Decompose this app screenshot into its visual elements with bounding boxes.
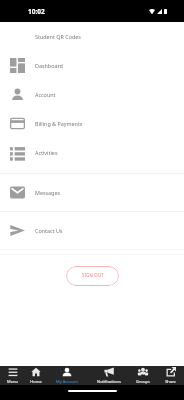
button[interactable]: Student QR Codes [0,22,184,51]
other: Notifications [104,367,114,377]
staticText: Dashboard [35,62,63,69]
staticText: Billing & Payments [35,120,83,127]
staticText: SIGN OUT [82,272,104,278]
button[interactable]: Dashboard [0,51,184,80]
other: Share [166,367,176,377]
other: Groups [138,367,148,377]
staticText: Activities [35,149,58,156]
staticText: Contact Us [35,227,63,234]
button[interactable]: Activities [0,138,184,167]
other: Menu [8,367,18,377]
staticText: Share [165,379,176,384]
staticText: Account [35,91,56,98]
staticText: Home [30,379,42,384]
other: Home [31,367,41,377]
button[interactable]: Messages [0,174,184,211]
staticText: My Account [56,379,78,384]
button[interactable]: SIGN OUT [66,266,119,286]
button[interactable]: Menu [0,366,25,385]
staticText: 10:02 [28,7,45,16]
staticText: Menu [7,379,18,384]
staticText: Notifications [97,379,121,384]
button[interactable]: Account [0,80,184,109]
other: My Account [62,367,72,377]
button[interactable]: Groups [129,366,157,385]
staticText: Groups [136,379,150,384]
button[interactable]: My Account [46,366,88,385]
staticText: Messages [35,189,61,196]
button[interactable]: Home [25,366,46,385]
button[interactable]: Contact Us [0,212,184,249]
button[interactable]: Billing & Payments [0,109,184,138]
button[interactable]: Notifications [88,366,129,385]
staticText: Student QR Codes [35,33,81,40]
button[interactable]: Share [157,366,184,385]
